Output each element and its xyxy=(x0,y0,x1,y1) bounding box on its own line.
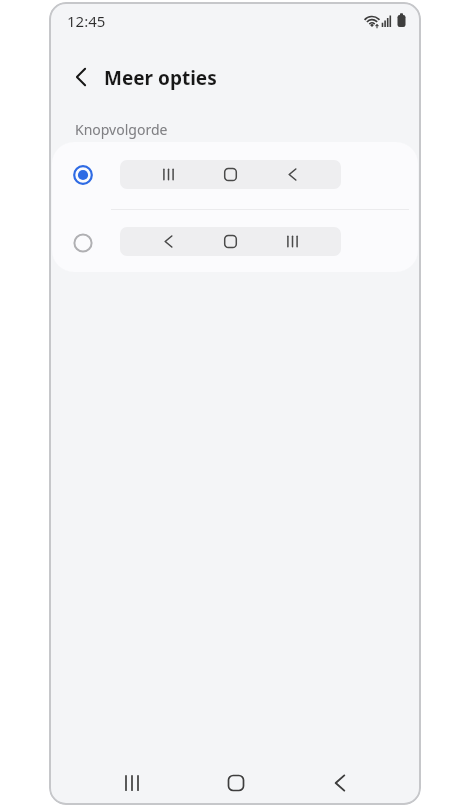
button[interactable] xyxy=(52,142,418,207)
button[interactable] xyxy=(63,59,99,95)
button[interactable] xyxy=(211,758,261,805)
staticText: 12:45 xyxy=(67,11,106,31)
staticText: Knopvolgorde xyxy=(75,120,168,139)
button[interactable] xyxy=(107,758,157,805)
button[interactable] xyxy=(315,758,365,805)
staticText: Meer opties xyxy=(104,65,217,91)
button[interactable] xyxy=(52,208,418,272)
